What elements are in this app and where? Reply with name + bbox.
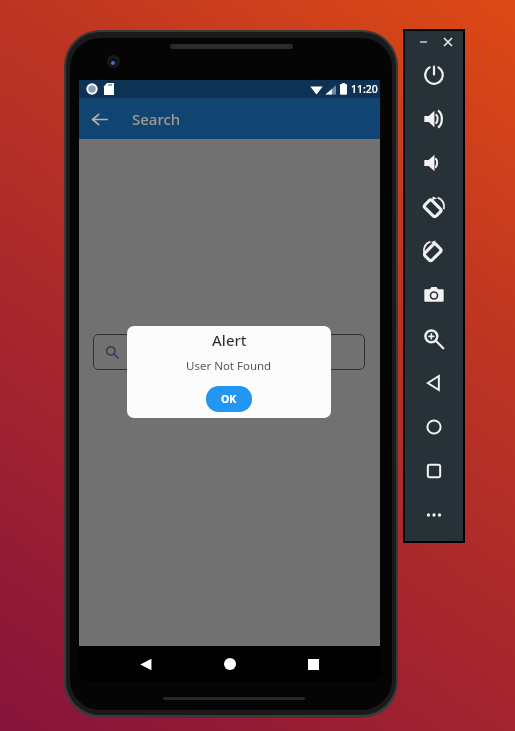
button[interactable]: Overview xyxy=(405,449,463,493)
staticText: 11:20 xyxy=(351,82,378,96)
button[interactable] xyxy=(93,334,365,370)
button[interactable]: More xyxy=(405,493,463,537)
button[interactable]: Volume down xyxy=(405,141,463,185)
button[interactable]: Recents xyxy=(296,647,330,681)
staticText: Search xyxy=(132,109,181,129)
button[interactable]: Back xyxy=(85,105,113,133)
button[interactable]: Volume up xyxy=(405,97,463,141)
button[interactable]: Back xyxy=(129,647,163,681)
button[interactable]: Close xyxy=(441,35,455,49)
button[interactable]: OK xyxy=(206,386,252,412)
button[interactable]: Rotate left xyxy=(405,185,463,229)
button[interactable]: Home xyxy=(213,647,247,681)
button[interactable]: Power xyxy=(405,53,463,97)
button[interactable]: Rotate right xyxy=(405,229,463,273)
button[interactable]: Back xyxy=(405,361,463,405)
button[interactable]: Minimize xyxy=(416,35,430,49)
staticText: User Not Found xyxy=(186,358,272,374)
staticText: OK xyxy=(221,392,237,406)
button[interactable]: Zoom xyxy=(405,317,463,361)
button[interactable]: Home xyxy=(405,405,463,449)
button[interactable]: Screenshot xyxy=(405,273,463,317)
staticText: Alert xyxy=(212,330,247,350)
